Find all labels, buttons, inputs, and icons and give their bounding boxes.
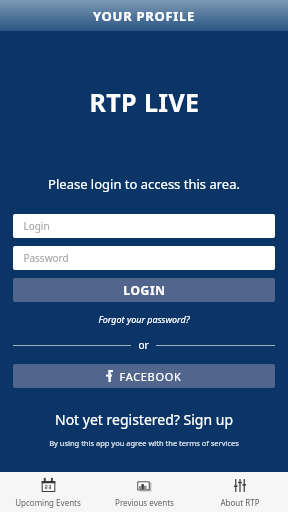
- staticText: Forgot your password?: [98, 313, 190, 325]
- staticText: By using this app you agree with the ter…: [49, 438, 239, 448]
- button[interactable]: LOGIN: [13, 278, 275, 302]
- staticText: Login: [23, 219, 50, 233]
- button[interactable]: Previous events: [96, 472, 192, 512]
- button[interactable]: Not yet registered? Sign up: [55, 410, 233, 429]
- staticText: Upcoming Events: [15, 497, 81, 508]
- staticText: About RTP: [220, 497, 260, 508]
- staticText: LOGIN: [123, 282, 166, 298]
- button[interactable]: Password: [13, 246, 275, 270]
- button[interactable]: Upcoming Events: [0, 472, 96, 512]
- staticText: RTP LIVE: [89, 85, 200, 119]
- staticText: FACEBOOK: [119, 369, 182, 384]
- staticText: or: [138, 338, 149, 352]
- staticText: Previous events: [115, 497, 174, 508]
- button[interactable]: FACEBOOK: [13, 364, 275, 388]
- button[interactable]: Login: [13, 214, 275, 238]
- staticText: YOUR PROFILE: [93, 7, 195, 25]
- staticText: Not yet registered? Sign up: [55, 410, 233, 429]
- staticText: Password: [23, 251, 69, 265]
- staticText: Please login to access this area.: [48, 175, 240, 193]
- button[interactable]: Forgot your password?: [98, 313, 190, 325]
- button[interactable]: About RTP: [192, 472, 288, 512]
